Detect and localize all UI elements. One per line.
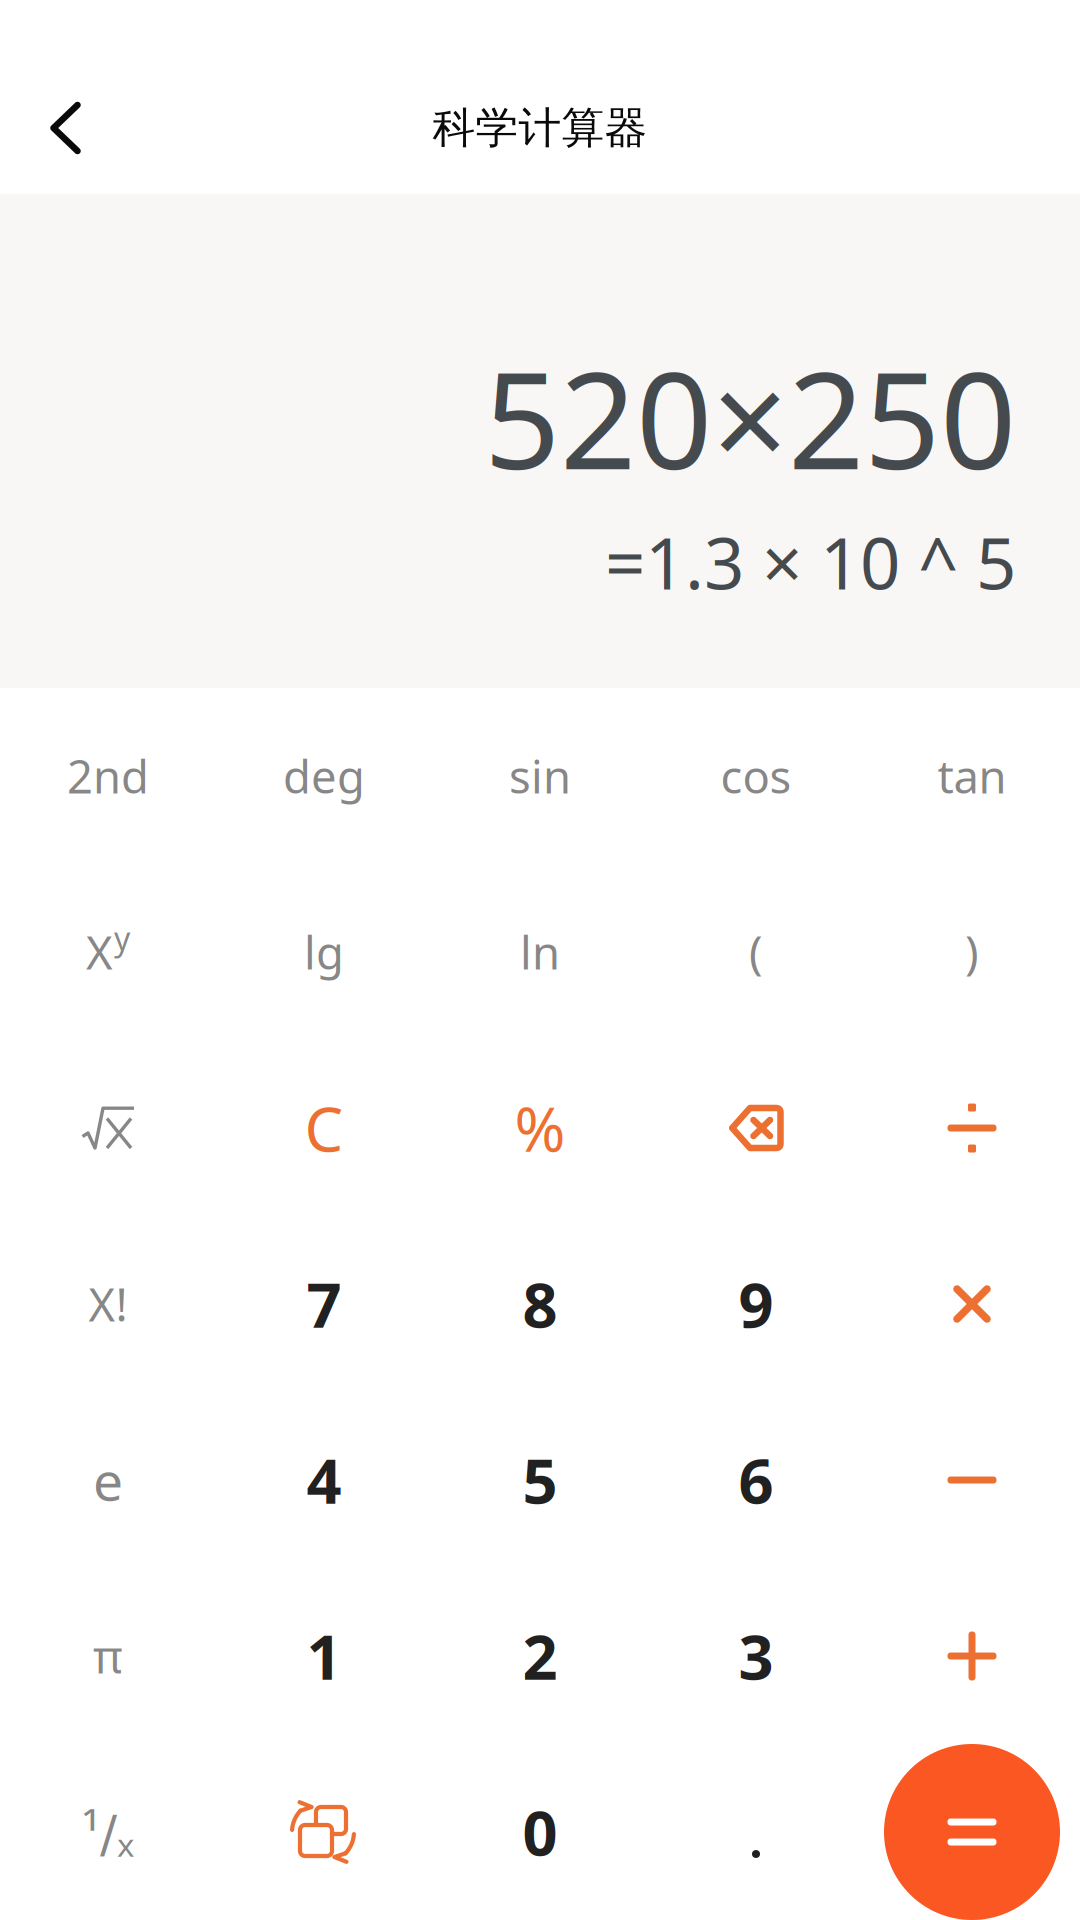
- button[interactable]: Equals: [864, 1744, 1080, 1920]
- button[interactable]: π: [0, 1568, 216, 1744]
- staticText: ): [965, 922, 979, 982]
- staticText: 3: [738, 1615, 773, 1697]
- button[interactable]: 2: [432, 1568, 648, 1744]
- staticText: 6: [738, 1439, 773, 1521]
- staticText: 1: [306, 1615, 341, 1697]
- staticText: C: [304, 1087, 343, 1169]
- staticText: =1.3 × 10 ^ 5: [605, 515, 1016, 609]
- button[interactable]: Backspace: [648, 1040, 864, 1216]
- button[interactable]: 7: [216, 1216, 432, 1392]
- button[interactable]: Back: [0, 68, 131, 188]
- staticText: 8: [522, 1263, 557, 1345]
- button[interactable]: Add: [864, 1568, 1080, 1744]
- button[interactable]: Unit convert: [216, 1744, 432, 1920]
- staticText: ln: [520, 922, 560, 982]
- staticText: lg: [304, 922, 344, 982]
- button[interactable]: Square root: [0, 1040, 216, 1216]
- staticText: 9: [738, 1263, 773, 1345]
- button[interactable]: e: [0, 1392, 216, 1568]
- staticText: 4: [306, 1439, 341, 1521]
- button[interactable]: (: [648, 864, 864, 1040]
- staticText: 科学计算器: [432, 102, 647, 154]
- button[interactable]: X: [0, 864, 216, 1040]
- button[interactable]: 6: [648, 1392, 864, 1568]
- button[interactable]: Subtract: [864, 1392, 1080, 1568]
- button[interactable]: X!: [0, 1216, 216, 1392]
- staticText: cos: [720, 746, 791, 806]
- staticText: (: [749, 922, 763, 982]
- staticText: e: [93, 1445, 123, 1515]
- staticText: 2: [522, 1615, 557, 1697]
- staticText: y: [114, 917, 130, 959]
- button[interactable]: lg: [216, 864, 432, 1040]
- staticText: X!: [88, 1274, 127, 1334]
- button[interactable]: 5: [432, 1392, 648, 1568]
- button[interactable]: 4: [216, 1392, 432, 1568]
- button[interactable]: sin: [432, 688, 648, 864]
- staticText: %: [514, 1087, 565, 1169]
- button[interactable]: Multiply: [864, 1216, 1080, 1392]
- button[interactable]: ¹∕ₓ: [0, 1744, 216, 1920]
- button[interactable]: 3: [648, 1568, 864, 1744]
- button[interactable]: 1: [216, 1568, 432, 1744]
- button[interactable]: deg: [216, 688, 432, 864]
- staticText: 5: [522, 1439, 557, 1521]
- button[interactable]: cos: [648, 688, 864, 864]
- staticText: 7: [306, 1263, 341, 1345]
- button[interactable]: %: [432, 1040, 648, 1216]
- button[interactable]: 9: [648, 1216, 864, 1392]
- staticText: π: [93, 1626, 123, 1686]
- button[interactable]: 8: [432, 1216, 648, 1392]
- staticText: 2nd: [67, 746, 149, 806]
- button[interactable]: C: [216, 1040, 432, 1216]
- button[interactable]: tan: [864, 688, 1080, 864]
- button[interactable]: 2nd: [0, 688, 216, 864]
- staticText: ¹∕ₓ: [82, 1798, 134, 1866]
- staticText: tan: [937, 746, 1006, 806]
- button[interactable]: 0: [432, 1744, 648, 1920]
- button[interactable]: ): [864, 864, 1080, 1040]
- staticText: 520×250: [484, 329, 1016, 506]
- button[interactable]: Divide: [864, 1040, 1080, 1216]
- staticText: deg: [283, 746, 365, 806]
- button[interactable]: ln: [432, 864, 648, 1040]
- staticText: 0: [522, 1791, 557, 1873]
- button[interactable]: Decimal point: [648, 1744, 864, 1920]
- staticText: sin: [509, 746, 571, 806]
- staticText: X: [86, 922, 113, 982]
